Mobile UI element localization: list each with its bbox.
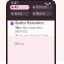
staticText: Saved — [14, 12, 22, 15]
button[interactable]: Unread — [31, 5, 52, 10]
staticText: ▰▂▬ — [44, 2, 51, 5]
staticText: Garden Reminders — [15, 21, 43, 25]
button[interactable]: All — [10, 5, 29, 10]
staticText: All — [14, 5, 18, 9]
staticText: Unread — [36, 5, 47, 9]
staticText: Muted — [36, 12, 45, 15]
staticText: 9:41 — [11, 1, 18, 5]
button[interactable]: Garden Reminders — [15, 21, 51, 35]
staticText: Tap to see the full plan — [15, 34, 48, 38]
button[interactable]: Muted — [31, 11, 52, 16]
button[interactable]: Saved — [10, 11, 29, 16]
staticText: Water the roses this morning — [15, 26, 42, 33]
staticText: Others — [14, 42, 23, 46]
